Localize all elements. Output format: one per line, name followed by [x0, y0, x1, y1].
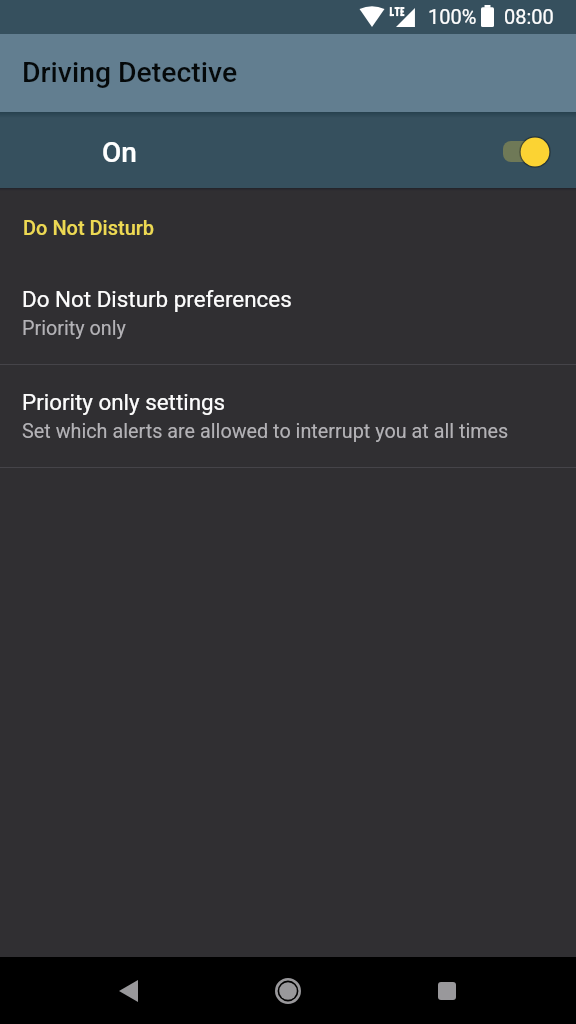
staticText: Driving Detective: [22, 56, 238, 89]
staticText: Priority only settings: [22, 389, 226, 415]
button[interactable]: Do Not Disturb preferences: [0, 262, 576, 364]
staticText: Do Not Disturb preferences: [22, 286, 292, 312]
button[interactable]: Recent apps: [417, 957, 477, 1024]
button[interactable]: Priority only settings: [0, 365, 576, 467]
staticText: On: [102, 136, 137, 169]
staticText: 100%: [428, 5, 477, 28]
button[interactable]: Driving Detective on/off: [497, 131, 555, 169]
staticText: 08:00: [504, 5, 554, 28]
button[interactable]: On: [0, 112, 576, 188]
button[interactable]: Home: [258, 957, 318, 1024]
staticText: Do Not Disturb: [23, 216, 155, 239]
staticText: Priority only: [22, 317, 126, 340]
staticText: Set which alerts are allowed to interrup…: [22, 420, 509, 443]
button[interactable]: Back: [98, 957, 158, 1024]
